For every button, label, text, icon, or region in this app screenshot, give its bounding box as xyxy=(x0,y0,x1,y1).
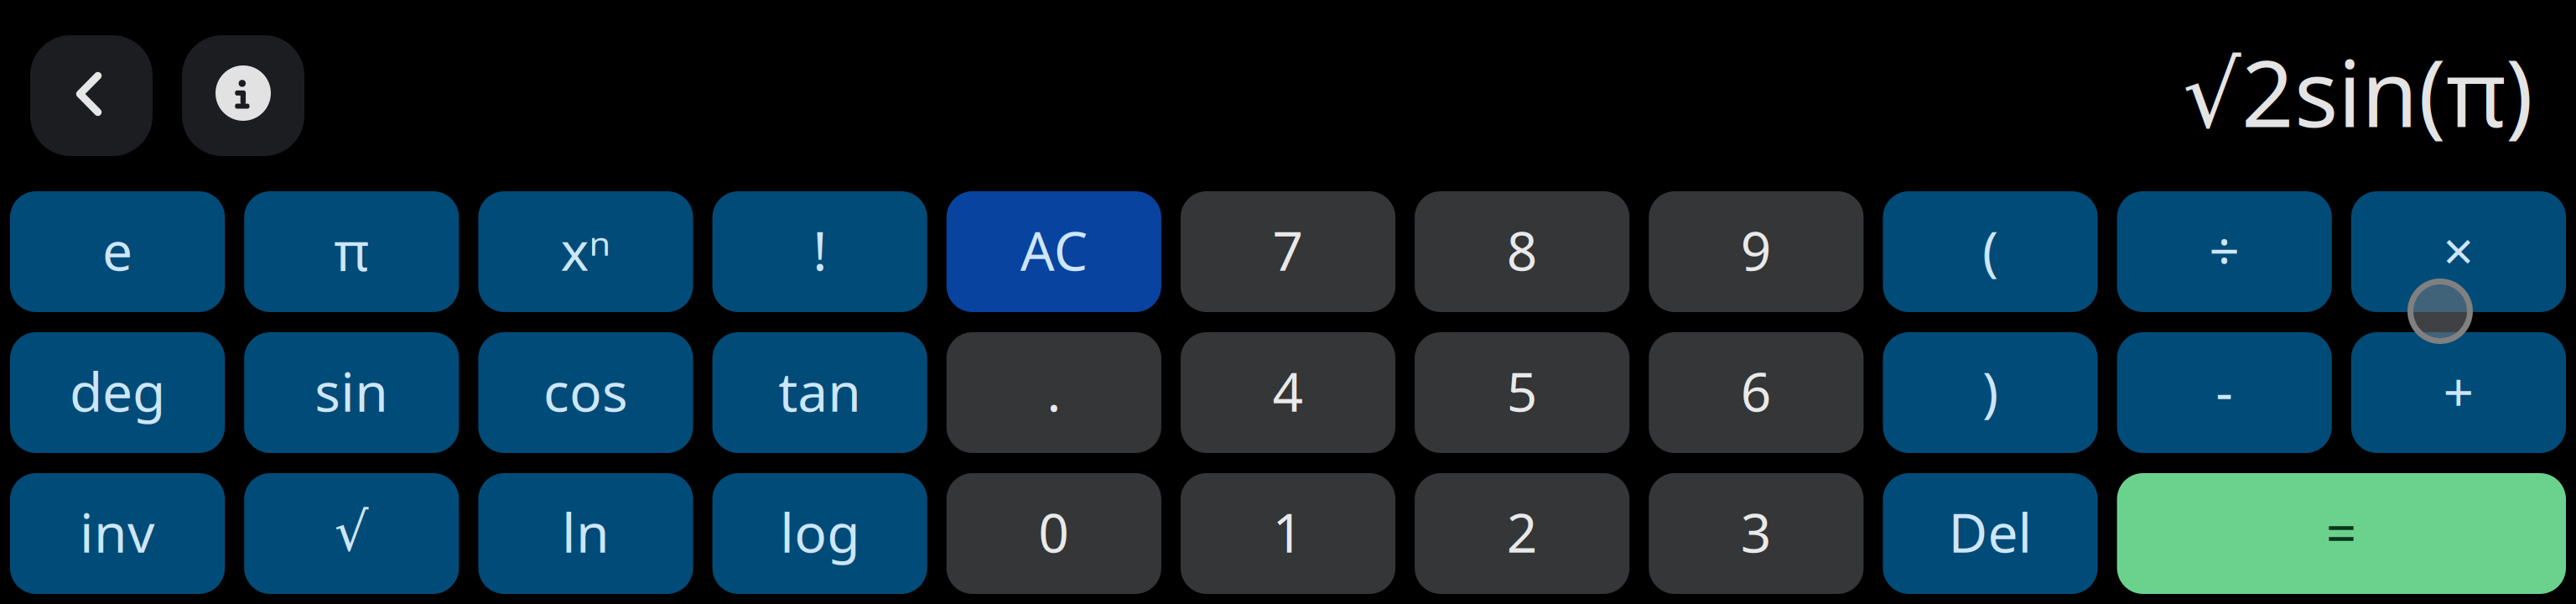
button[interactable]: ( xyxy=(1883,191,2098,312)
button[interactable]: deg xyxy=(10,332,225,453)
staticText: 6 xyxy=(1741,355,1772,427)
staticText: 4 xyxy=(1272,355,1304,427)
staticText: 2 xyxy=(1507,496,1538,568)
staticText: deg xyxy=(70,355,165,427)
staticText: √2sin(π) xyxy=(2183,31,2533,152)
button[interactable]: inv xyxy=(10,473,225,594)
staticText: sin xyxy=(315,355,388,427)
button[interactable]: ! xyxy=(712,191,927,312)
button[interactable]: e xyxy=(10,191,225,312)
staticText: 8 xyxy=(1507,214,1538,286)
button[interactable]: ) xyxy=(1883,332,2098,453)
button[interactable]: ln xyxy=(478,473,693,594)
staticText: 1 xyxy=(1272,496,1304,568)
staticText: - xyxy=(2216,355,2233,427)
button[interactable]: Del xyxy=(1883,473,2098,594)
button[interactable]: × xyxy=(2351,191,2566,312)
staticText: + xyxy=(2443,355,2474,427)
staticText: AC xyxy=(1020,214,1087,286)
button[interactable]: log xyxy=(712,473,927,594)
staticText: . xyxy=(1047,355,1061,427)
button[interactable]: 5 xyxy=(1415,332,1630,453)
button[interactable]: - xyxy=(2117,332,2332,453)
button[interactable]: AC xyxy=(946,191,1161,312)
button[interactable]: 0 xyxy=(946,473,1161,594)
button[interactable]: tan xyxy=(712,332,927,453)
staticText: 9 xyxy=(1741,214,1772,286)
button[interactable]: Info xyxy=(182,35,304,156)
button[interactable]: 1 xyxy=(1181,473,1395,594)
staticText: ln xyxy=(562,496,610,568)
button[interactable]: 9 xyxy=(1649,191,1864,312)
button[interactable]: xⁿ xyxy=(478,191,693,312)
button[interactable]: Back xyxy=(30,35,153,156)
button[interactable]: 3 xyxy=(1649,473,1864,594)
staticText: × xyxy=(2443,214,2474,286)
button[interactable]: sin xyxy=(244,332,459,453)
button[interactable]: √ xyxy=(244,473,459,594)
button[interactable]: ÷ xyxy=(2117,191,2332,312)
staticText: π xyxy=(334,214,369,286)
staticText: tan xyxy=(778,355,861,427)
button[interactable]: π xyxy=(244,191,459,312)
staticText: Del xyxy=(1948,496,2032,568)
staticText: = xyxy=(2326,496,2357,568)
button[interactable]: 7 xyxy=(1181,191,1395,312)
staticText: inv xyxy=(80,496,155,568)
button[interactable]: cos xyxy=(478,332,693,453)
staticText: √ xyxy=(334,501,369,562)
button[interactable]: 4 xyxy=(1181,332,1395,453)
staticText: e xyxy=(102,214,133,286)
button[interactable]: + xyxy=(2351,332,2566,453)
staticText: log xyxy=(780,496,860,568)
button[interactable]: 6 xyxy=(1649,332,1864,453)
staticText: ÷ xyxy=(2209,214,2240,286)
staticText: ) xyxy=(1982,355,1998,427)
staticText: xⁿ xyxy=(561,214,611,286)
staticText: 3 xyxy=(1741,496,1772,568)
staticText: ! xyxy=(813,214,827,286)
button[interactable]: . xyxy=(946,332,1161,453)
button[interactable]: 2 xyxy=(1415,473,1630,594)
button[interactable]: 8 xyxy=(1415,191,1630,312)
staticText: cos xyxy=(543,355,628,427)
staticText: 0 xyxy=(1038,496,1069,568)
staticText: 7 xyxy=(1272,214,1304,286)
button[interactable]: = xyxy=(2117,473,2566,594)
staticText: ( xyxy=(1982,214,1998,286)
staticText: 5 xyxy=(1507,355,1538,427)
